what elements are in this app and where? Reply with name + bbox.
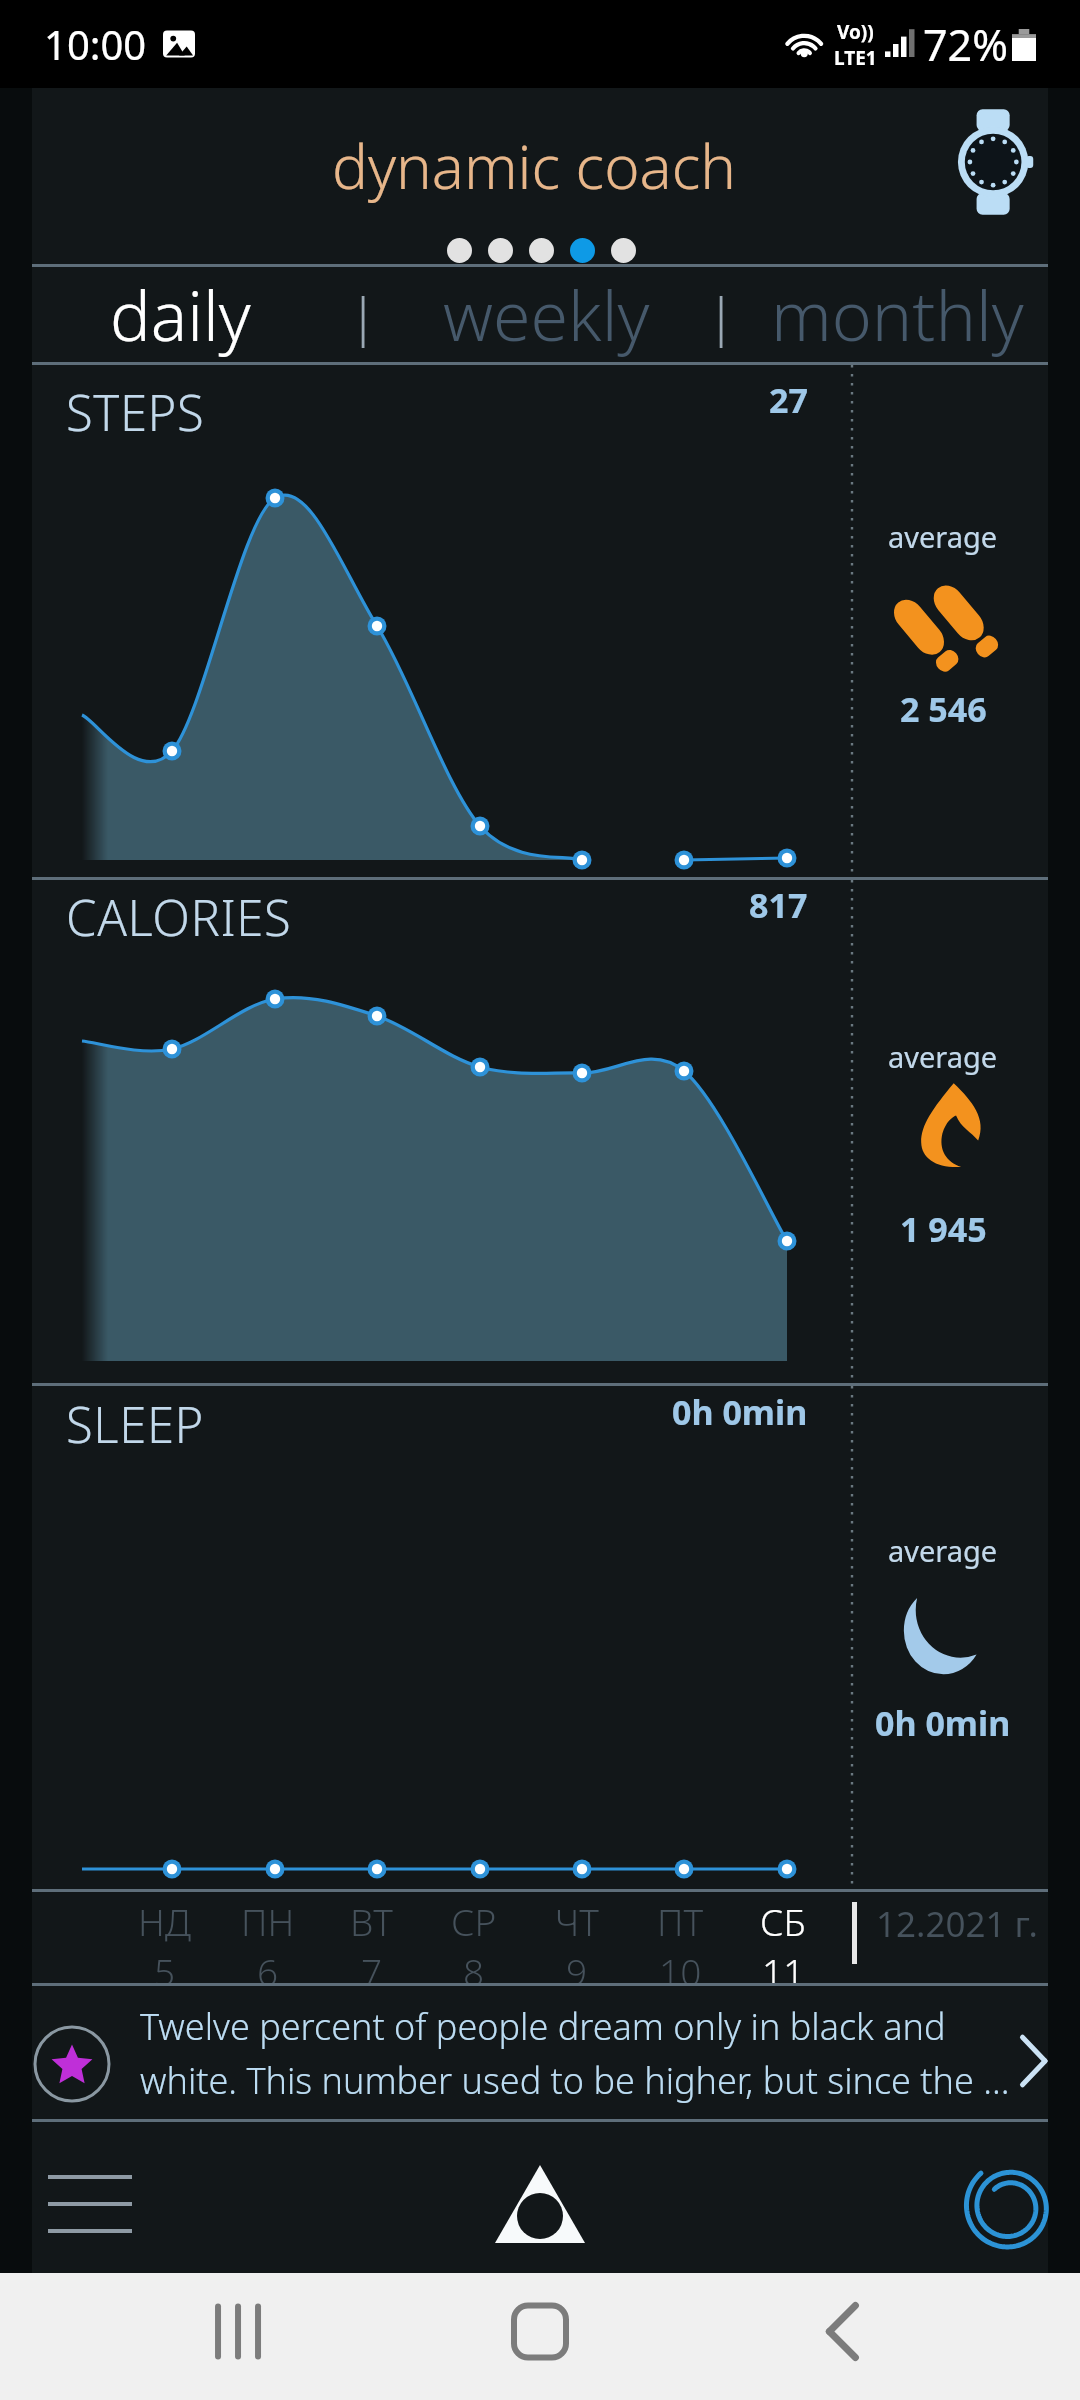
staticText: |	[707, 279, 736, 350]
staticText: SLEEP	[66, 1391, 205, 1458]
staticText: 2 546	[900, 686, 987, 732]
staticText: daily	[110, 268, 251, 361]
button[interactable]: Twelve percent of people dream only in b…	[32, 1986, 1048, 2119]
staticText: 0h 0min	[672, 1389, 808, 1435]
staticText: 10:00	[44, 17, 147, 71]
staticText: ЧТ	[555, 1896, 599, 1946]
staticText: 12.2021 г.	[876, 1900, 1038, 1948]
button[interactable]: ПТ	[630, 1892, 730, 1983]
staticText: 817	[749, 882, 808, 928]
staticText: 7	[361, 1946, 383, 1983]
staticText: STEPS	[66, 379, 205, 446]
staticText: 8	[463, 1946, 485, 1983]
staticText: 72%	[923, 15, 1008, 74]
staticText: 1 945	[900, 1206, 987, 1252]
staticText: CALORIES	[66, 884, 292, 951]
button[interactable]: monthly	[746, 267, 1048, 362]
button[interactable]: Home	[476, 2149, 604, 2259]
staticText: Vo))	[837, 19, 874, 45]
button[interactable]: СР	[424, 1892, 524, 1983]
staticText: LTE1	[834, 45, 877, 71]
staticText: НД	[138, 1896, 192, 1946]
staticText: ПН	[241, 1896, 295, 1946]
staticText: Twelve percent of people dream only in b…	[140, 2002, 1012, 2104]
staticText: weekly	[443, 268, 650, 361]
staticText: average	[888, 1037, 998, 1076]
button[interactable]: ЧТ	[527, 1892, 627, 1983]
staticText: average	[888, 517, 998, 556]
staticText: 27	[769, 377, 808, 423]
staticText: 6	[257, 1946, 279, 1983]
staticText: |	[349, 279, 378, 350]
button[interactable]: НД	[115, 1892, 215, 1983]
button[interactable]: Activity	[918, 2144, 1048, 2254]
button[interactable]: ПН	[218, 1892, 318, 1983]
staticText: 11	[762, 1946, 805, 1983]
staticText: 5	[154, 1946, 176, 1983]
staticText: 0h 0min	[875, 1700, 1011, 1746]
staticText: average	[888, 1531, 998, 1570]
button[interactable]: daily	[52, 267, 308, 362]
staticText: ПТ	[657, 1896, 704, 1946]
button[interactable]: СБ	[733, 1892, 833, 1983]
button[interactable]: ВТ	[321, 1892, 421, 1983]
staticText: СБ	[760, 1896, 806, 1946]
staticText: СР	[451, 1896, 497, 1946]
staticText: ВТ	[350, 1896, 393, 1946]
staticText: monthly	[771, 268, 1024, 361]
staticText: 9	[566, 1946, 588, 1983]
staticText: dynamic coach	[332, 125, 736, 207]
button[interactable]: weekly	[400, 267, 692, 362]
staticText: 10	[659, 1946, 702, 1983]
button[interactable]: Connected watch	[948, 111, 1044, 213]
button[interactable]: Menu	[32, 2155, 148, 2253]
